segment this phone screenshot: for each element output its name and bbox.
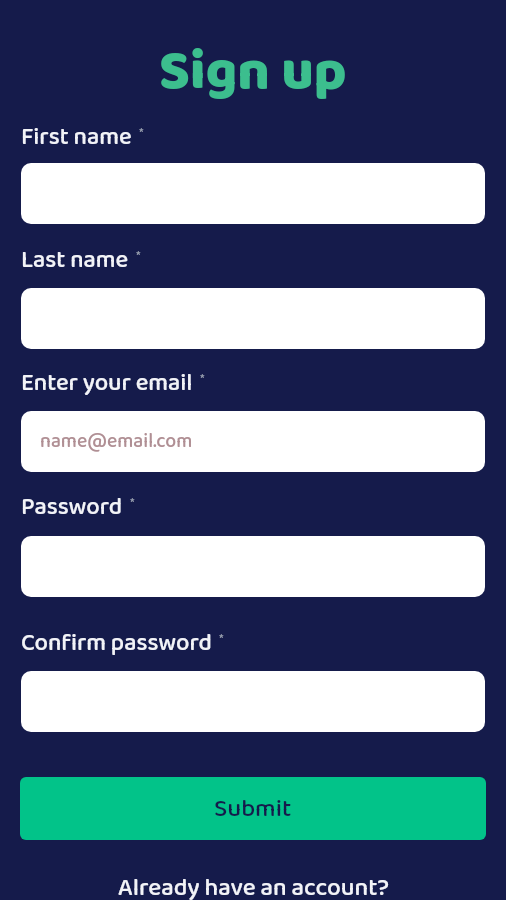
staticText: Already have an account? (118, 869, 389, 900)
button[interactable]: name@email.com (21, 411, 485, 472)
button[interactable] (21, 536, 485, 597)
button[interactable] (21, 671, 485, 732)
staticText: Enter your email (21, 364, 193, 402)
staticText: * (219, 628, 224, 652)
staticText: * (130, 492, 135, 516)
button[interactable]: Already have an account? (0, 869, 506, 900)
staticText: Sign up (159, 28, 347, 108)
staticText: name@email.com (40, 426, 193, 457)
button[interactable]: Submit (20, 777, 486, 840)
button[interactable] (21, 288, 485, 349)
staticText: First name (21, 118, 132, 156)
staticText: Submit (214, 789, 292, 829)
button[interactable] (21, 163, 485, 224)
staticText: Confirm password (21, 624, 212, 662)
staticText: * (139, 122, 144, 146)
staticText: * (200, 368, 205, 392)
staticText: * (136, 245, 141, 269)
staticText: Last name (21, 241, 129, 279)
staticText: Password (21, 488, 123, 526)
